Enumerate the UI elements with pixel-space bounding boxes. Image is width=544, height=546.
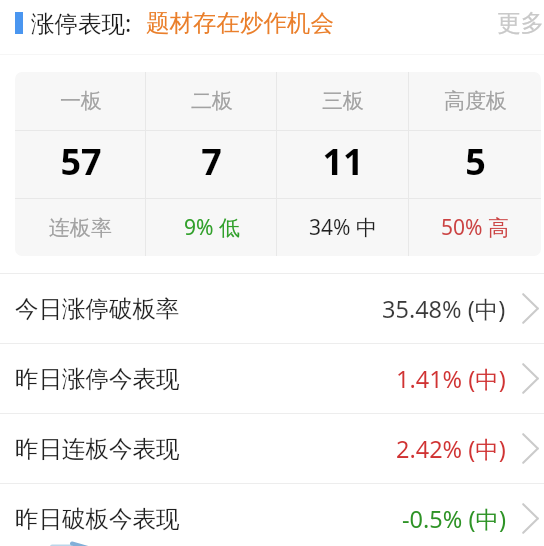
staticText: 1.41% (中) [396,363,506,395]
staticText: -0.5% (中) [402,503,506,535]
button[interactable]: 昨日涨停今表现 [0,344,544,413]
staticText: 11 [322,137,364,186]
staticText: 昨日连板今表现 [15,434,180,464]
staticText: 57 [60,137,102,186]
button[interactable]: 一板 [15,72,541,256]
staticText: 50% 高 [441,213,509,242]
staticText: 二板 [191,88,233,114]
staticText: 5 [465,137,486,186]
staticText: 2.42% (中) [396,433,506,465]
staticText: 7 [201,137,222,186]
staticText: 一板 [60,88,102,114]
staticText: 35.48% (中) [382,293,506,325]
other: Open details [522,503,539,534]
button[interactable]: 今日涨停破板率 [0,274,544,343]
staticText: 连板率 [49,215,112,241]
button[interactable]: 昨日连板今表现 [0,414,544,483]
button[interactable]: 昨日破板今表现 [0,484,544,546]
staticText: 昨日涨停今表现 [15,364,180,394]
other: Open details [522,433,539,464]
staticText: 更多 [497,8,544,38]
staticText: 34% 中 [309,213,377,242]
staticText: 昨日破板今表现 [15,504,180,534]
staticText: 今日涨停破板率 [15,294,180,324]
button[interactable]: 更多 [497,2,544,44]
staticText: 题材存在炒作机会 [146,8,334,38]
other: Open details [522,363,539,394]
staticText: 三板 [322,88,364,114]
staticText: 高度板 [444,88,507,114]
other: Open details [522,293,539,324]
staticText: 涨停表现: [31,7,132,39]
staticText: 9% 低 [184,213,240,242]
